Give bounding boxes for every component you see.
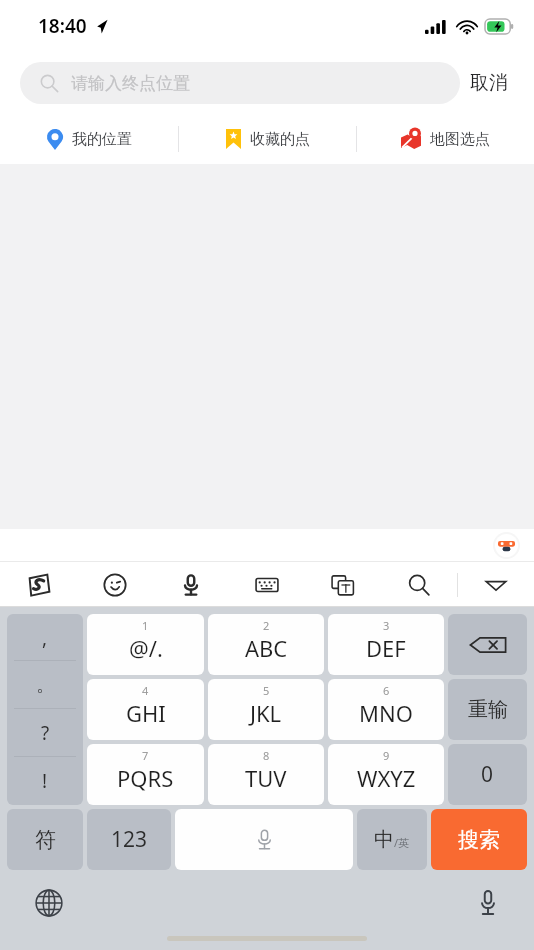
button[interactable]: 0 bbox=[448, 744, 527, 805]
button[interactable]: Assistant bbox=[493, 532, 520, 559]
staticText: ABC bbox=[245, 633, 288, 663]
staticText: WXYZ bbox=[357, 763, 416, 793]
staticText: 中 bbox=[374, 827, 394, 852]
button[interactable]: 5 bbox=[208, 679, 324, 740]
staticText: 5 bbox=[263, 683, 270, 698]
button[interactable]: 2 bbox=[208, 614, 324, 675]
staticText: 18:40 bbox=[38, 13, 87, 39]
staticText: 搜索 bbox=[458, 827, 500, 853]
staticText: 9 bbox=[383, 748, 390, 763]
button[interactable]: Change language bbox=[32, 886, 66, 920]
staticText: 地图选点 bbox=[430, 130, 490, 149]
button[interactable]: 7 bbox=[87, 744, 204, 805]
button[interactable]: Keyboard layout bbox=[229, 562, 305, 607]
staticText: 收藏的点 bbox=[250, 130, 310, 149]
button[interactable]: Sogou input bbox=[0, 562, 77, 607]
button[interactable]: 9 bbox=[328, 744, 444, 805]
staticText: 符 bbox=[35, 827, 56, 853]
staticText: 1 bbox=[142, 618, 149, 633]
staticText: TUV bbox=[245, 763, 287, 793]
staticText: 7 bbox=[142, 748, 149, 763]
staticText: /英 bbox=[394, 835, 410, 850]
staticText: 取消 bbox=[470, 71, 508, 95]
button[interactable]: 4 bbox=[87, 679, 204, 740]
staticText: DEF bbox=[366, 633, 406, 663]
button[interactable]: 中 bbox=[357, 809, 427, 870]
button[interactable]: ? bbox=[7, 709, 83, 757]
button[interactable]: 123 bbox=[87, 809, 171, 870]
staticText: @/. bbox=[129, 633, 163, 663]
button[interactable]: 3 bbox=[328, 614, 444, 675]
button[interactable]: 8 bbox=[208, 744, 324, 805]
staticText: 4 bbox=[142, 683, 149, 698]
button[interactable]: Voice input bbox=[470, 884, 506, 920]
button[interactable]: 请输入终点位置 bbox=[20, 62, 460, 104]
staticText: PQRS bbox=[117, 763, 174, 793]
button[interactable]: Backspace bbox=[448, 614, 527, 675]
staticText: 2 bbox=[263, 618, 270, 633]
button[interactable]: 地图选点 bbox=[357, 114, 534, 164]
button[interactable]: Search bbox=[381, 562, 457, 607]
staticText: , bbox=[42, 625, 48, 651]
button[interactable]: 符 bbox=[7, 809, 83, 870]
button[interactable]: 收藏的点 bbox=[179, 114, 356, 164]
staticText: 6 bbox=[383, 683, 390, 698]
staticText: 请输入终点位置 bbox=[71, 73, 190, 94]
button[interactable]: 重输 bbox=[448, 679, 527, 740]
staticText: 123 bbox=[111, 825, 148, 854]
staticText: ? bbox=[41, 720, 50, 746]
staticText: 3 bbox=[383, 618, 390, 633]
button[interactable]: 我的位置 bbox=[0, 114, 178, 164]
button[interactable]: 。 bbox=[7, 661, 83, 709]
staticText: GHI bbox=[126, 698, 166, 728]
button[interactable]: 1 bbox=[87, 614, 204, 675]
button[interactable]: 搜索 bbox=[431, 809, 527, 870]
button[interactable]: , bbox=[7, 614, 83, 661]
button[interactable]: Space and voice input bbox=[175, 809, 353, 870]
button[interactable]: Translate bbox=[305, 562, 381, 607]
button[interactable]: ! bbox=[7, 757, 83, 805]
button[interactable]: 取消 bbox=[460, 63, 518, 103]
staticText: JKL bbox=[250, 698, 282, 728]
button[interactable]: Emoji bbox=[77, 562, 153, 607]
staticText: 8 bbox=[263, 748, 270, 763]
staticText: ! bbox=[42, 768, 48, 794]
staticText: 我的位置 bbox=[72, 130, 132, 149]
button[interactable]: 6 bbox=[328, 679, 444, 740]
staticText: 0 bbox=[481, 760, 494, 789]
staticText: 。 bbox=[36, 673, 55, 697]
button[interactable]: Voice input bbox=[153, 562, 229, 607]
button[interactable]: Hide keyboard bbox=[458, 562, 534, 607]
staticText: MNO bbox=[359, 698, 413, 728]
staticText: 重输 bbox=[468, 697, 508, 722]
